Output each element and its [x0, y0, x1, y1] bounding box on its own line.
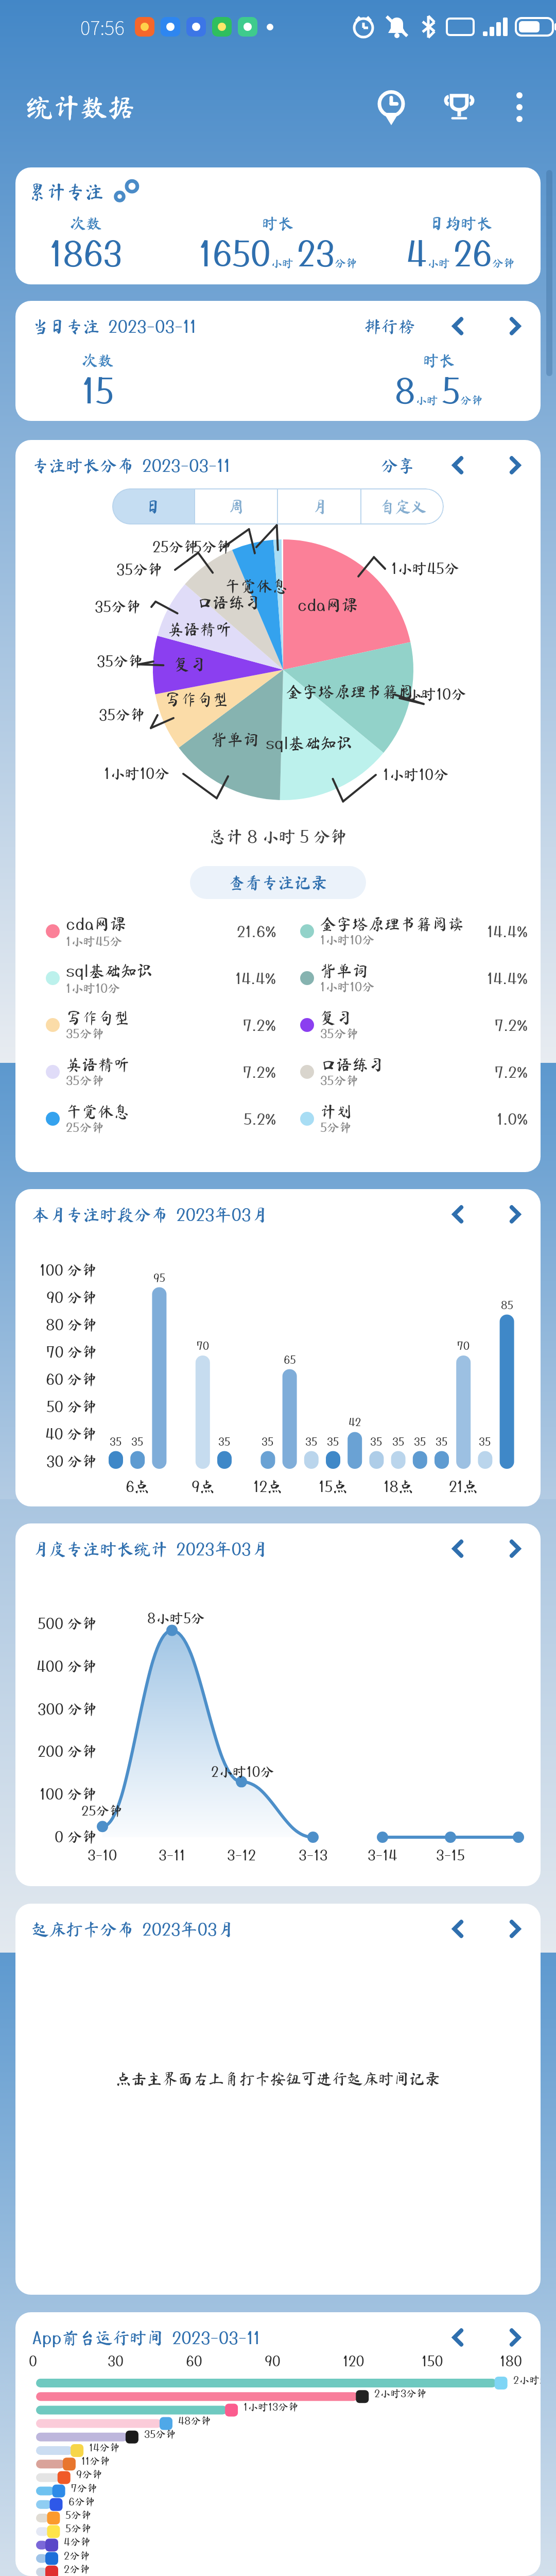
- staticText: 当日专注 2023-03-11: [32, 316, 197, 336]
- button[interactable]: 周: [195, 488, 277, 524]
- button[interactable]: Next: [500, 312, 529, 341]
- staticText: 42: [349, 1415, 361, 1428]
- staticText: 小时: [427, 258, 450, 269]
- staticText: 3-10: [88, 1846, 117, 1863]
- staticText: 18点: [384, 1478, 413, 1495]
- staticText: 金字塔原理书籍阅读: [320, 916, 464, 932]
- button[interactable]: Previous: [444, 1200, 473, 1229]
- button[interactable]: cda网课: [15, 908, 281, 955]
- staticText: 1小时10分: [320, 932, 375, 946]
- staticText: 月: [311, 499, 327, 515]
- button[interactable]: 金字塔原理书籍阅读: [281, 908, 541, 955]
- staticText: 35: [479, 1435, 491, 1448]
- button[interactable]: 计划: [281, 1095, 541, 1142]
- staticText: 总计 8 小时 5 分钟: [209, 826, 347, 846]
- staticText: 分钟: [460, 395, 483, 406]
- staticText: 35: [370, 1435, 383, 1448]
- button[interactable]: Previous: [444, 1534, 473, 1563]
- staticText: 本月专注时段分布 2023年03月: [32, 1205, 268, 1225]
- button[interactable]: 分享: [378, 457, 418, 474]
- staticText: 复习: [174, 656, 206, 672]
- button[interactable]: 背单词: [281, 955, 541, 1002]
- staticText: 8小时5分: [147, 1609, 205, 1626]
- staticText: 专注时长分布 2023-03-11: [32, 455, 231, 476]
- staticText: 25分钟: [66, 1120, 105, 1134]
- staticText: 月度专注时长统计 2023年03月: [32, 1539, 268, 1559]
- staticText: 300 分钟: [38, 1700, 97, 1718]
- button[interactable]: Previous: [444, 1914, 473, 1943]
- staticText: 2小时3分钟: [374, 2387, 427, 2399]
- staticText: 90 分钟: [46, 1289, 97, 1306]
- button[interactable]: Focus history: [367, 82, 416, 132]
- button[interactable]: 写作句型: [15, 1002, 281, 1048]
- button[interactable]: Next: [500, 1200, 529, 1229]
- button[interactable]: Previous: [444, 451, 473, 480]
- staticText: 100 分钟: [40, 1261, 97, 1279]
- staticText: 6分钟: [68, 2495, 95, 2507]
- staticText: 5分钟: [65, 2509, 92, 2521]
- staticText: 120: [343, 2352, 364, 2369]
- staticText: 11分钟: [81, 2454, 110, 2467]
- staticText: 9分钟: [76, 2468, 102, 2480]
- staticText: cda网课: [66, 914, 126, 934]
- button[interactable]: Previous: [444, 312, 473, 341]
- staticText: 200 分钟: [38, 1742, 97, 1760]
- staticText: 英语精听: [168, 621, 232, 637]
- button[interactable]: 查看专注记录: [190, 866, 366, 899]
- staticText: 次数: [70, 215, 102, 231]
- staticText: 2分钟: [64, 2549, 90, 2562]
- staticText: 95: [153, 1271, 165, 1284]
- staticText: 35分钟: [66, 1026, 105, 1040]
- button[interactable]: More options: [497, 85, 542, 129]
- staticText: 35: [262, 1435, 274, 1448]
- button[interactable]: Next: [500, 451, 529, 480]
- staticText: 70: [457, 1339, 470, 1352]
- button[interactable]: 自定义: [361, 488, 444, 524]
- staticText: 60 分钟: [46, 1370, 97, 1388]
- staticText: 35分钟: [97, 652, 143, 670]
- staticText: 分钟: [335, 258, 358, 269]
- staticText: 100 分钟: [40, 1785, 97, 1803]
- staticText: 35分钟: [116, 561, 163, 578]
- staticText: cda网课: [298, 596, 358, 615]
- button[interactable]: 日: [112, 488, 194, 524]
- button[interactable]: 排行榜: [361, 318, 418, 335]
- staticText: 35分钟: [66, 1073, 105, 1087]
- staticText: 70: [197, 1339, 210, 1352]
- button[interactable]: 午觉休息: [15, 1095, 281, 1142]
- staticText: 7分钟: [71, 2482, 98, 2494]
- button[interactable]: Previous: [444, 2323, 473, 2352]
- staticText: 35: [392, 1435, 405, 1448]
- staticText: 35: [218, 1435, 231, 1448]
- staticText: 500 分钟: [38, 1615, 97, 1632]
- staticText: 5.2%: [244, 1110, 276, 1128]
- button[interactable]: sql基础知识: [15, 955, 281, 1002]
- staticText: 1小时45分: [391, 560, 459, 577]
- staticText: 14.4%: [487, 969, 528, 987]
- staticText: sql基础知识: [66, 961, 153, 980]
- staticText: 1小时10分: [383, 766, 449, 783]
- button[interactable]: Achievements: [435, 82, 484, 132]
- staticText: 48分钟: [178, 2414, 212, 2427]
- staticText: 累计专注: [28, 182, 104, 201]
- button[interactable]: Next: [500, 1914, 529, 1943]
- button[interactable]: 口语练习: [281, 1048, 541, 1095]
- staticText: 周: [228, 499, 244, 515]
- staticText: 8: [395, 370, 415, 410]
- staticText: 写作句型: [66, 1010, 130, 1026]
- staticText: 40 分钟: [45, 1425, 97, 1443]
- staticText: 35分钟: [320, 1073, 359, 1087]
- staticText: 35: [414, 1435, 426, 1448]
- staticText: 35: [436, 1435, 448, 1448]
- button[interactable]: 复习: [281, 1002, 541, 1048]
- staticText: 21.6%: [237, 922, 276, 940]
- staticText: 2分钟: [64, 2563, 90, 2575]
- button[interactable]: 英语精听: [15, 1048, 281, 1095]
- staticText: 25分钟: [152, 538, 199, 555]
- button[interactable]: 月: [278, 488, 360, 524]
- staticText: 时长: [262, 215, 294, 231]
- staticText: 起床打卡分布 2023年03月: [32, 1919, 234, 1939]
- button[interactable]: Next: [500, 1534, 529, 1563]
- button[interactable]: Next: [500, 2323, 529, 2352]
- staticText: 7.2%: [495, 1063, 528, 1081]
